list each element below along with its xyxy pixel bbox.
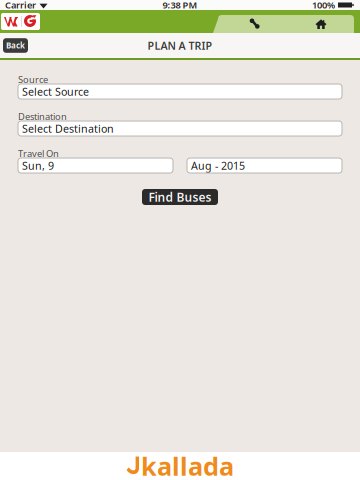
staticText: PLAN A TRIP xyxy=(147,38,212,53)
staticText: Travel On xyxy=(18,147,59,160)
staticText: Find Buses xyxy=(148,189,211,205)
button[interactable]: Find Buses xyxy=(142,189,218,205)
staticText: Aug - 2015 xyxy=(191,158,245,173)
staticText: Source xyxy=(18,73,48,86)
staticText: Select Source xyxy=(22,84,89,99)
staticText: Destination xyxy=(18,110,67,123)
button[interactable]: Kallada xyxy=(1,13,40,30)
staticText: kallada xyxy=(141,449,234,480)
staticText: Sun, 9 xyxy=(22,158,54,173)
button[interactable]: Select Destination xyxy=(18,121,342,136)
button[interactable]: Home xyxy=(288,15,354,33)
button[interactable]: Back xyxy=(3,38,28,53)
staticText: 100% xyxy=(312,0,335,11)
button[interactable]: Select Source xyxy=(18,84,342,99)
button[interactable]: Aug - 2015 xyxy=(187,158,342,173)
staticText: 9:38 PM xyxy=(162,0,197,11)
button[interactable]: Sun, 9 xyxy=(18,158,173,173)
staticText: Select Destination xyxy=(22,121,114,136)
staticText: Carrier xyxy=(5,0,36,11)
button[interactable]: Call xyxy=(222,15,288,33)
staticText: Back xyxy=(6,40,25,51)
